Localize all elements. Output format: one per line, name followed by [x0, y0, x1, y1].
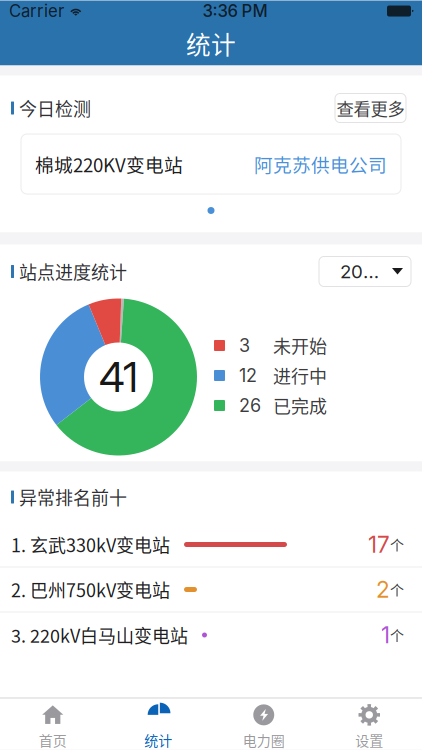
- staticText: 2: [376, 576, 390, 603]
- staticText: 查看更多: [336, 95, 404, 121]
- staticText: 未开始: [273, 332, 327, 359]
- staticText: 今日检测: [19, 95, 91, 121]
- staticText: 个: [390, 625, 404, 645]
- staticText: 3:36 PM: [202, 1, 267, 21]
- staticText: 个: [390, 579, 404, 600]
- staticText: Carrier: [9, 1, 64, 21]
- staticText: 1. 玄武330kV变电站: [11, 531, 170, 558]
- staticText: 1: [381, 621, 390, 649]
- button[interactable]: 1. 玄武330kV变电站: [0, 522, 422, 567]
- staticText: 站点进度统计: [19, 258, 127, 285]
- staticText: 已完成: [273, 392, 327, 419]
- staticText: 设置: [355, 730, 383, 750]
- button[interactable]: 查看更多: [335, 93, 406, 122]
- staticText: 进行中: [273, 362, 327, 389]
- staticText: 17: [368, 531, 390, 558]
- staticText: 个: [390, 534, 404, 555]
- staticText: 统计: [186, 26, 236, 61]
- staticText: 棉城220KV变电站: [35, 150, 183, 177]
- staticText: 电力圈: [243, 730, 285, 750]
- staticText: 统计: [144, 730, 172, 750]
- button[interactable]: 统计: [105, 698, 211, 750]
- staticText: 阿克苏供电公司: [254, 150, 387, 177]
- button[interactable]: 电力圈: [211, 698, 316, 750]
- staticText: 2. 巴州750kV变电站: [11, 576, 170, 603]
- staticText: 12: [239, 365, 257, 386]
- staticText: 41: [99, 352, 138, 402]
- staticText: 3. 220kV白马山变电站: [11, 622, 188, 648]
- button[interactable]: 3. 220kV白马山变电站: [0, 612, 422, 657]
- button[interactable]: 2017: [319, 256, 411, 286]
- staticText: 异常排名前十: [19, 484, 127, 510]
- button[interactable]: 2. 巴州750kV变电站: [0, 567, 422, 612]
- button[interactable]: 首页: [0, 698, 105, 750]
- staticText: 3: [239, 335, 250, 356]
- staticText: 26: [239, 395, 261, 416]
- button[interactable]: 设置: [316, 698, 422, 750]
- staticText: 首页: [39, 730, 67, 750]
- staticText: 2017: [340, 260, 380, 283]
